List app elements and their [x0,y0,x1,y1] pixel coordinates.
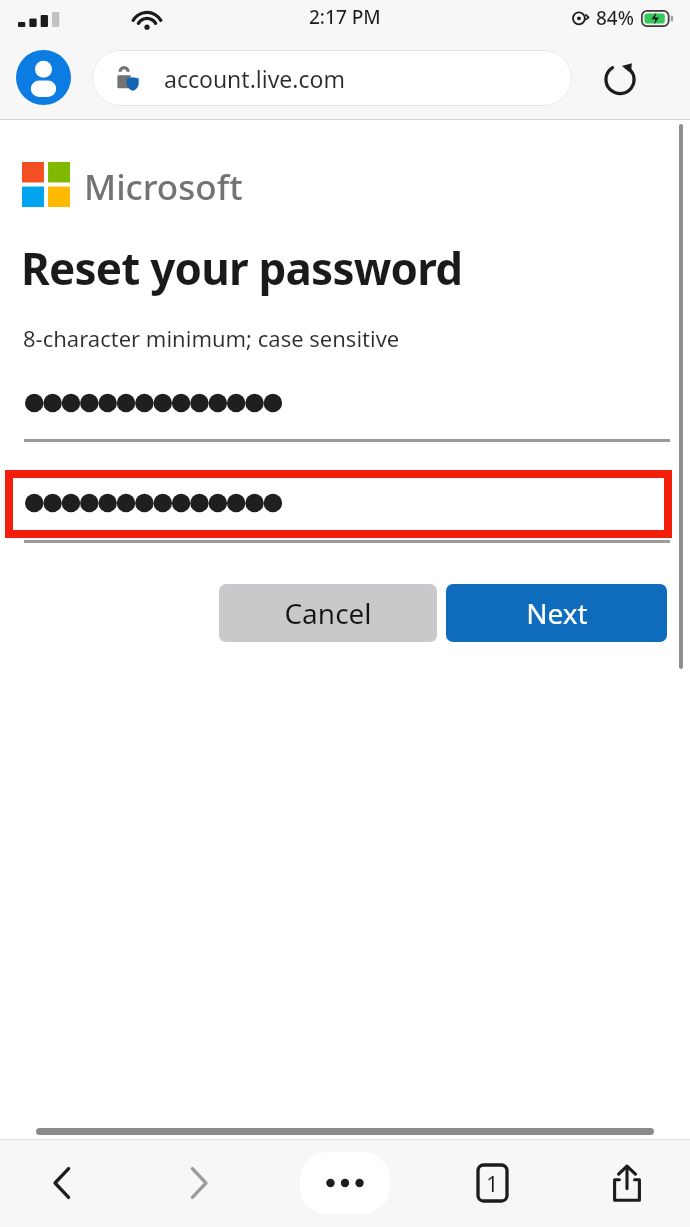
button[interactable]: Next [446,584,667,642]
button[interactable] [5,470,672,538]
button[interactable]: Profile [16,50,71,105]
button[interactable]: Back [30,1150,96,1216]
button[interactable] [0,368,690,440]
staticText: Microsoft [84,163,243,211]
button[interactable]: More [300,1152,390,1214]
staticText: 2:17 PM [309,4,381,30]
button[interactable]: Cancel [219,584,437,642]
staticText: Cancel [284,594,372,632]
button[interactable]: Reload [601,59,639,97]
staticText: 8-character minimum; case sensitive [23,323,400,353]
button[interactable]: account.live.com [92,50,572,106]
staticText: 1 [486,1168,499,1198]
staticText: account.live.com [164,63,345,94]
button[interactable]: Tabs [459,1150,525,1216]
staticText: 84% [596,5,634,31]
button[interactable]: Forward [165,1150,231,1216]
button[interactable]: Share [594,1150,660,1216]
staticText: Reset your password [21,238,463,298]
staticText: Next [526,594,588,632]
